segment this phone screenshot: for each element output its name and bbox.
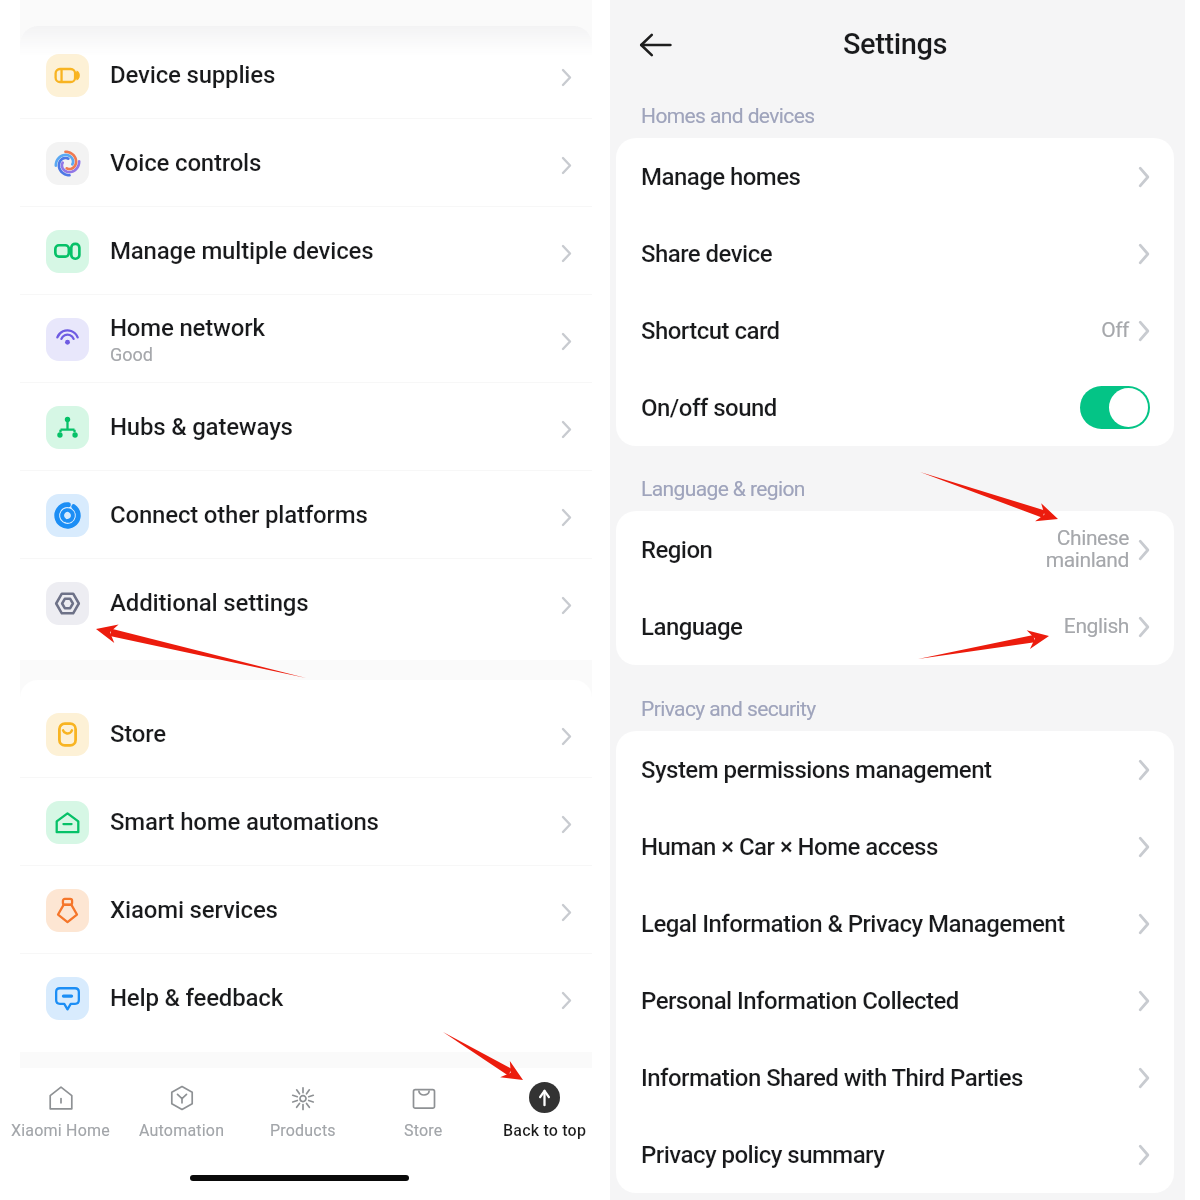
other: Back to top [529, 1082, 560, 1113]
button[interactable]: Back to top [484, 1081, 605, 1167]
button[interactable]: Voice controls [20, 119, 592, 207]
button[interactable]: Automation [121, 1081, 242, 1167]
button[interactable]: Human × Car × Home access [616, 808, 1174, 885]
button[interactable]: Connect other platforms [20, 471, 592, 559]
button[interactable]: On/off sound [616, 369, 1174, 446]
button[interactable]: Back [631, 21, 679, 69]
button[interactable]: System permissions management [616, 731, 1174, 808]
staticText: Voice controls [110, 149, 262, 177]
button[interactable]: Legal Information & Privacy Management [616, 885, 1174, 962]
staticText: Language [641, 613, 743, 641]
staticText: English [1063, 614, 1129, 639]
button[interactable]: Language [616, 588, 1174, 665]
staticText: Legal Information & Privacy Management [641, 910, 1065, 938]
button[interactable]: Xiaomi Home [0, 1081, 121, 1167]
staticText: Good [110, 344, 153, 365]
button[interactable]: Products [242, 1081, 363, 1167]
staticText: Store [110, 720, 166, 748]
staticText: Device supplies [110, 61, 276, 89]
button[interactable]: Device supplies [20, 31, 592, 119]
button[interactable]: Privacy policy summary [616, 1116, 1174, 1193]
staticText: Help & feedback [110, 984, 284, 1012]
button[interactable]: Manage homes [616, 138, 1174, 215]
staticText: Privacy policy summary [641, 1141, 885, 1169]
staticText: Xiaomi services [110, 896, 278, 924]
staticText: On/off sound [641, 394, 777, 422]
staticText: Connect other platforms [110, 501, 368, 529]
staticText: Store [404, 1121, 443, 1140]
button[interactable]: On/off sound toggle [1080, 386, 1150, 429]
staticText: Products [270, 1121, 336, 1140]
button[interactable]: Hubs & gateways [20, 383, 592, 471]
staticText: Share device [641, 240, 773, 268]
staticText: Smart home automations [110, 808, 379, 836]
staticText: Off [1101, 318, 1129, 343]
staticText: Xiaomi Home [11, 1121, 110, 1140]
button[interactable]: Information Shared with Third Parties [616, 1039, 1174, 1116]
button[interactable]: Help & feedback [20, 954, 592, 1042]
staticText: Homes and devices [641, 104, 815, 129]
staticText: Additional settings [110, 589, 309, 617]
button[interactable]: Share device [616, 215, 1174, 292]
staticText: Shortcut card [641, 317, 780, 345]
staticText: System permissions management [641, 756, 992, 784]
staticText: Home network [110, 314, 265, 342]
button[interactable]: Shortcut card [616, 292, 1174, 369]
staticText: Manage multiple devices [110, 237, 374, 265]
button[interactable]: Store [20, 690, 592, 778]
staticText: Hubs & gateways [110, 413, 293, 441]
button[interactable]: Personal Information Collected [616, 962, 1174, 1039]
staticText: Back to top [503, 1121, 587, 1140]
staticText: Personal Information Collected [641, 987, 959, 1015]
button[interactable]: Smart home automations [20, 778, 592, 866]
button[interactable]: Xiaomi services [20, 866, 592, 954]
button[interactable]: Additional settings [20, 559, 592, 647]
button[interactable]: Region [616, 511, 1174, 588]
staticText: Settings [843, 27, 948, 61]
staticText: Privacy and security [641, 697, 816, 722]
button[interactable]: Manage multiple devices [20, 207, 592, 295]
button[interactable]: Home network [20, 295, 592, 383]
button[interactable]: Store [363, 1081, 484, 1167]
staticText: Automation [139, 1121, 225, 1140]
staticText: Human × Car × Home access [641, 833, 938, 861]
staticText: Region [641, 536, 713, 564]
staticText: Language & region [641, 477, 805, 502]
staticText: Chinese mainland [1045, 526, 1129, 573]
staticText: Information Shared with Third Parties [641, 1064, 1023, 1092]
staticText: Manage homes [641, 163, 801, 191]
